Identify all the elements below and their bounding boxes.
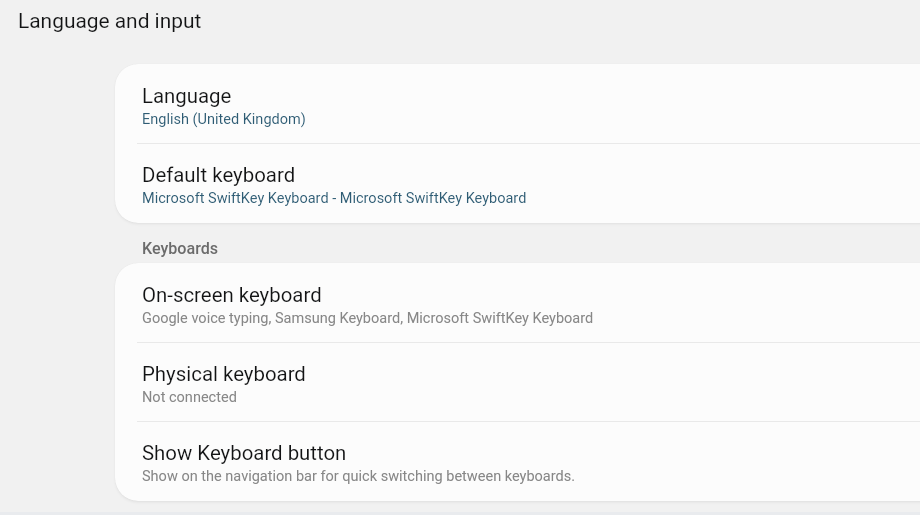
staticText: Keyboards [142, 239, 219, 258]
staticText: Google voice typing, Samsung Keyboard, M… [142, 310, 594, 327]
staticText: Microsoft SwiftKey Keyboard - Microsoft … [142, 190, 527, 207]
staticText: Physical keyboard [142, 362, 306, 386]
staticText: On-screen keyboard [142, 283, 322, 307]
button[interactable]: Physical keyboard [115, 342, 920, 421]
staticText: Not connected [142, 389, 237, 406]
staticText: Language and input [18, 9, 202, 33]
button[interactable]: Show Keyboard button [115, 421, 920, 500]
staticText: Show on the navigation bar for quick swi… [142, 468, 576, 485]
button[interactable]: On-screen keyboard [115, 263, 920, 342]
staticText: English (United Kingdom) [142, 111, 306, 128]
button[interactable]: Language [115, 64, 920, 143]
staticText: Default keyboard [142, 163, 296, 187]
staticText: Language [142, 84, 232, 108]
button[interactable]: Default keyboard [115, 143, 920, 222]
staticText: Show Keyboard button [142, 441, 347, 465]
